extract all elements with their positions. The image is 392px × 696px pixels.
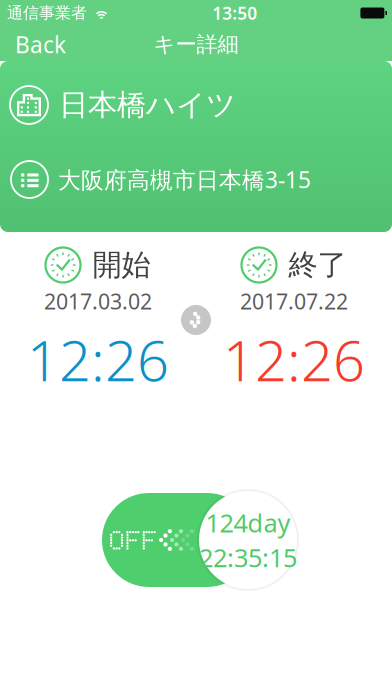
- button[interactable]: Unlock toggle, currently off: [102, 493, 254, 587]
- staticText: 大阪府高槻市日本橋3-15: [58, 164, 311, 194]
- staticText: 124day: [205, 506, 290, 539]
- button[interactable]: Back: [0, 28, 92, 61]
- staticText: Back: [15, 29, 66, 59]
- staticText: キー詳細: [153, 31, 238, 58]
- staticText: 12:26: [223, 322, 365, 397]
- staticText: 2017.07.22: [240, 287, 348, 315]
- staticText: 2017.03.02: [44, 287, 152, 315]
- staticText: 22:35:15: [199, 540, 297, 574]
- staticText: 12:26: [27, 322, 169, 397]
- staticText: 開始: [92, 247, 150, 283]
- staticText: 終了: [288, 247, 346, 283]
- staticText: 13:50: [212, 1, 257, 24]
- staticText: 通信事業者: [7, 3, 87, 23]
- staticText: 日本橋ハイツ: [59, 87, 236, 123]
